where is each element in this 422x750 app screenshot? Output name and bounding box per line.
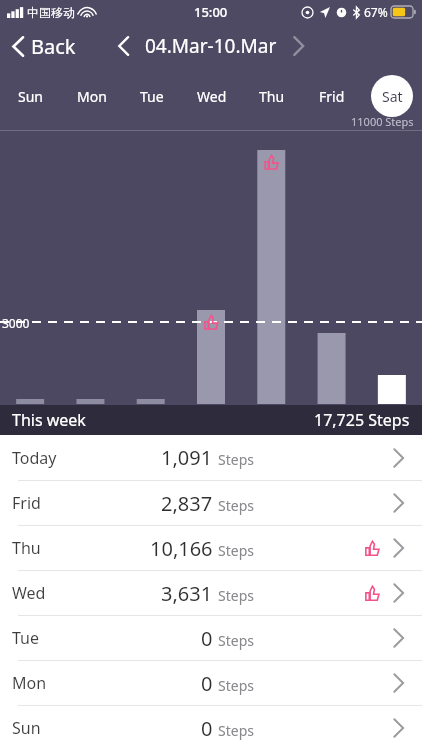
staticText: Wed [12,582,46,604]
staticText: 0 [201,625,213,652]
staticText: 15:00 [194,3,228,21]
staticText: Sun [18,87,43,106]
button[interactable]: Thu [0,526,422,570]
button[interactable]: Wed [182,68,242,130]
staticText: This week [12,409,86,431]
button[interactable]: Today [0,435,422,480]
staticText: 0 [201,670,213,697]
button[interactable]: Thu [242,68,302,130]
staticText: Steps [218,676,254,695]
button[interactable]: Mon [0,661,422,705]
staticText: 1,091 [161,444,213,471]
button[interactable]: Tue [0,616,422,660]
staticText: 0 [201,715,213,742]
staticText: 67% [364,4,388,20]
staticText: 3,631 [161,580,213,607]
staticText: Sat [382,87,403,106]
staticText: 04.Mar-10.Mar [145,33,277,59]
staticText: 2,837 [161,490,213,517]
button[interactable]: Back [0,27,88,66]
staticText: Steps [218,496,254,515]
button[interactable]: This week [0,405,422,435]
staticText: 中国移动 [27,5,75,20]
staticText: Frid [319,87,345,106]
staticText: Steps [218,631,254,650]
button[interactable]: Wed [0,571,422,615]
staticText: Mon [77,87,107,106]
staticText: Thu [259,87,285,106]
button[interactable]: Mon [61,68,122,130]
button[interactable]: Frid [0,481,422,525]
staticText: Mon [12,672,47,694]
staticText: Steps [218,541,254,560]
staticText: 11000 Steps [351,114,414,129]
staticText: Thu [12,537,41,559]
button[interactable]: Sun [0,706,422,750]
staticText: Today [12,447,57,469]
staticText: Steps [218,721,254,740]
staticText: Tue [12,627,40,649]
staticText: Sun [12,717,41,739]
staticText: Steps [218,450,254,469]
staticText: Back [31,33,76,60]
staticText: 3000 [2,315,30,331]
button[interactable]: Frid [302,68,362,130]
button[interactable]: Sun [0,68,61,130]
button[interactable]: Tue [122,68,182,130]
staticText: Frid [12,492,41,514]
staticText: Wed [197,87,227,106]
button[interactable]: Sat [362,68,422,130]
button[interactable]: Previous week [109,30,138,62]
staticText: Steps [218,586,254,605]
staticText: 10,166 [150,535,213,562]
staticText: Tue [140,87,164,106]
button[interactable]: Next week [284,30,313,62]
staticText: 17,725 Steps [314,409,410,431]
